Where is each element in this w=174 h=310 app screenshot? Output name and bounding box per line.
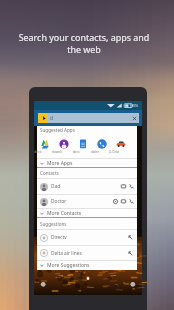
button[interactable]: Directv — [37, 230, 137, 245]
button[interactable]: drive — [40, 133, 50, 152]
staticText: Suggestions — [40, 221, 67, 227]
button[interactable]: More Suggestions — [37, 261, 137, 269]
other: Call — [129, 184, 134, 189]
staticText: Delta air lines — [51, 250, 82, 257]
other: Details — [113, 199, 118, 204]
button[interactable]: dialer — [97, 133, 107, 152]
staticText: Dad — [51, 183, 61, 190]
staticText: Contacts — [40, 170, 59, 176]
other: Clear search — [132, 116, 137, 121]
staticText: docs — [71, 150, 81, 154]
staticText: JL Driving — [109, 150, 119, 154]
staticText: Doctor — [51, 198, 67, 205]
staticText: Suggested Apps — [40, 127, 75, 133]
staticText: d — [50, 115, 54, 122]
other: Send message — [121, 184, 126, 189]
button[interactable]: JL Driving — [116, 133, 126, 152]
button[interactable]: Bing search — [38, 113, 48, 123]
other: Call — [129, 199, 134, 204]
button[interactable]: d — [50, 113, 137, 123]
staticText: More Suggestions — [47, 262, 90, 269]
staticText: dialer — [90, 150, 100, 154]
staticText: drive — [33, 150, 43, 154]
other: Open suggestion — [128, 251, 133, 256]
button[interactable]: docs — [78, 133, 88, 152]
staticText: More Apps — [47, 160, 73, 167]
button[interactable]: More Apps — [37, 159, 137, 167]
staticText: Search your contacts, apps and the web — [13, 31, 155, 56]
staticText: 63% — [130, 103, 139, 109]
staticText: Directv — [51, 234, 67, 241]
button[interactable]: Delta air lines — [37, 246, 137, 260]
staticText: More Contacts — [47, 210, 82, 217]
button[interactable]: Doctor — [37, 195, 137, 208]
button[interactable]: Dad — [37, 179, 137, 194]
other: Open suggestion — [128, 235, 133, 240]
other: Send message — [121, 199, 126, 204]
button[interactable]: More Contacts — [37, 209, 137, 217]
button[interactable]: downloads — [59, 133, 69, 152]
staticText: downloads — [52, 150, 62, 154]
